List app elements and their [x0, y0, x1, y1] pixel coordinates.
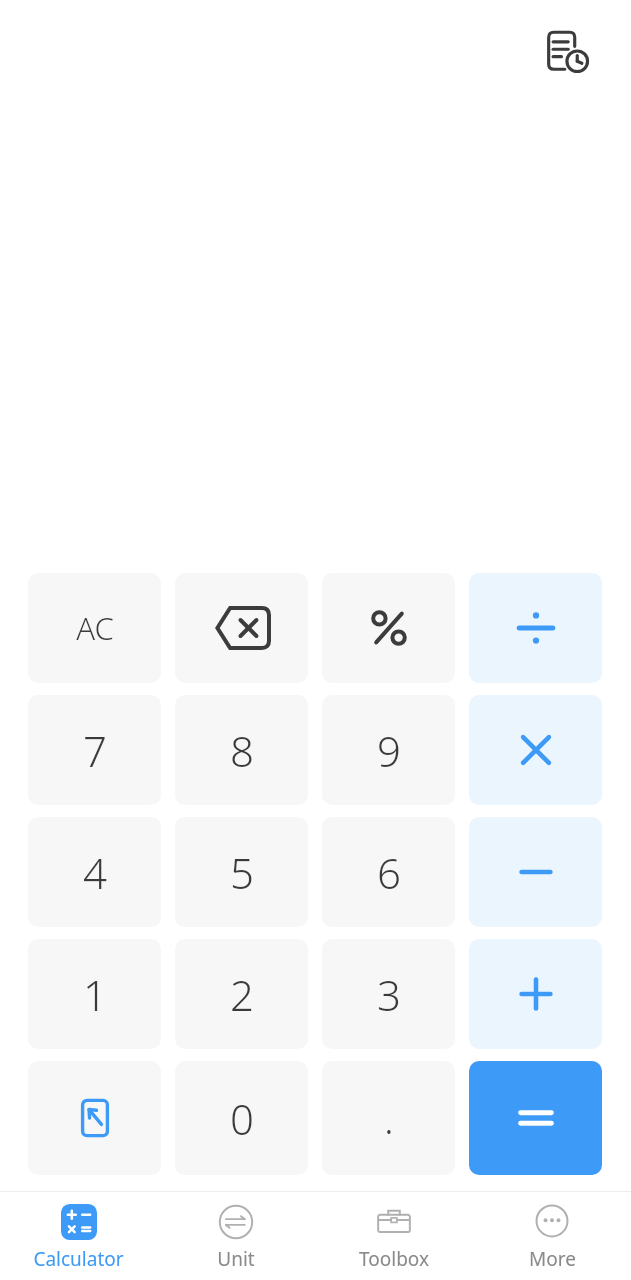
button[interactable]: Minus — [469, 817, 602, 927]
staticText: . — [384, 1091, 394, 1145]
button[interactable]: 9 — [322, 695, 455, 805]
button[interactable]: Backspace — [175, 573, 308, 683]
button[interactable]: More — [473, 1192, 631, 1272]
staticText: 0 — [230, 1090, 254, 1147]
staticText: Unit — [217, 1246, 255, 1272]
button[interactable]: Expand — [28, 1061, 161, 1175]
button[interactable]: Multiply — [469, 695, 602, 805]
button[interactable]: Plus — [469, 939, 602, 1049]
button[interactable]: 0 — [175, 1061, 308, 1175]
button[interactable]: 5 — [175, 817, 308, 927]
button[interactable]: 4 — [28, 817, 161, 927]
staticText: 9 — [377, 722, 401, 779]
staticText: Calculator — [33, 1246, 124, 1272]
button[interactable]: Equals — [469, 1061, 602, 1175]
button[interactable]: 1 — [28, 939, 161, 1049]
staticText: 3 — [377, 966, 401, 1023]
staticText: 7 — [83, 722, 107, 779]
staticText: 6 — [377, 844, 401, 901]
button[interactable]: AC — [28, 573, 161, 683]
button[interactable]: Divide — [469, 573, 602, 683]
button[interactable]: Percent — [322, 573, 455, 683]
button[interactable]: 2 — [175, 939, 308, 1049]
staticText: 4 — [83, 844, 107, 901]
staticText: More — [529, 1246, 576, 1272]
staticText: 8 — [230, 722, 254, 779]
button[interactable]: . — [322, 1061, 455, 1175]
staticText: Toolbox — [359, 1246, 429, 1272]
staticText: 5 — [230, 844, 254, 901]
button[interactable]: 8 — [175, 695, 308, 805]
button[interactable]: 3 — [322, 939, 455, 1049]
button[interactable]: 6 — [322, 817, 455, 927]
button[interactable]: History — [536, 20, 600, 84]
button[interactable]: Unit — [157, 1192, 315, 1272]
button[interactable]: 7 — [28, 695, 161, 805]
staticText: 1 — [83, 966, 107, 1023]
button[interactable]: Calculator — [0, 1192, 157, 1272]
staticText: AC — [76, 607, 114, 649]
staticText: 2 — [230, 966, 254, 1023]
button[interactable]: Toolbox — [315, 1192, 473, 1272]
